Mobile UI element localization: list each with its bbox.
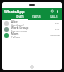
staticText: STATUS [32, 15, 41, 18]
staticText: Alice [11, 20, 18, 24]
button[interactable]: CALLS [45, 15, 62, 20]
button[interactable]: Alice [2, 20, 62, 26]
staticText: Hey there! [11, 24, 24, 26]
button[interactable]: Search [50, 9, 55, 14]
staticText: 9:41 [55, 22, 60, 25]
staticText: Call me [11, 36, 20, 38]
staticText: Mom [11, 32, 19, 36]
staticText: CALLS [50, 15, 58, 18]
staticText: See you soon [11, 30, 28, 32]
button[interactable]: More [55, 9, 60, 14]
staticText: 9:12 [55, 28, 60, 31]
button[interactable]: CHATS [11, 15, 28, 20]
staticText: Yesterday [50, 34, 60, 37]
button[interactable]: Mom [2, 32, 62, 38]
button[interactable]: STATUS [28, 15, 45, 20]
staticText: WhatsApp [4, 9, 25, 14]
staticText: Work Group [11, 26, 29, 30]
button[interactable]: Work Group [2, 26, 62, 32]
staticText: CHATS [16, 15, 24, 18]
